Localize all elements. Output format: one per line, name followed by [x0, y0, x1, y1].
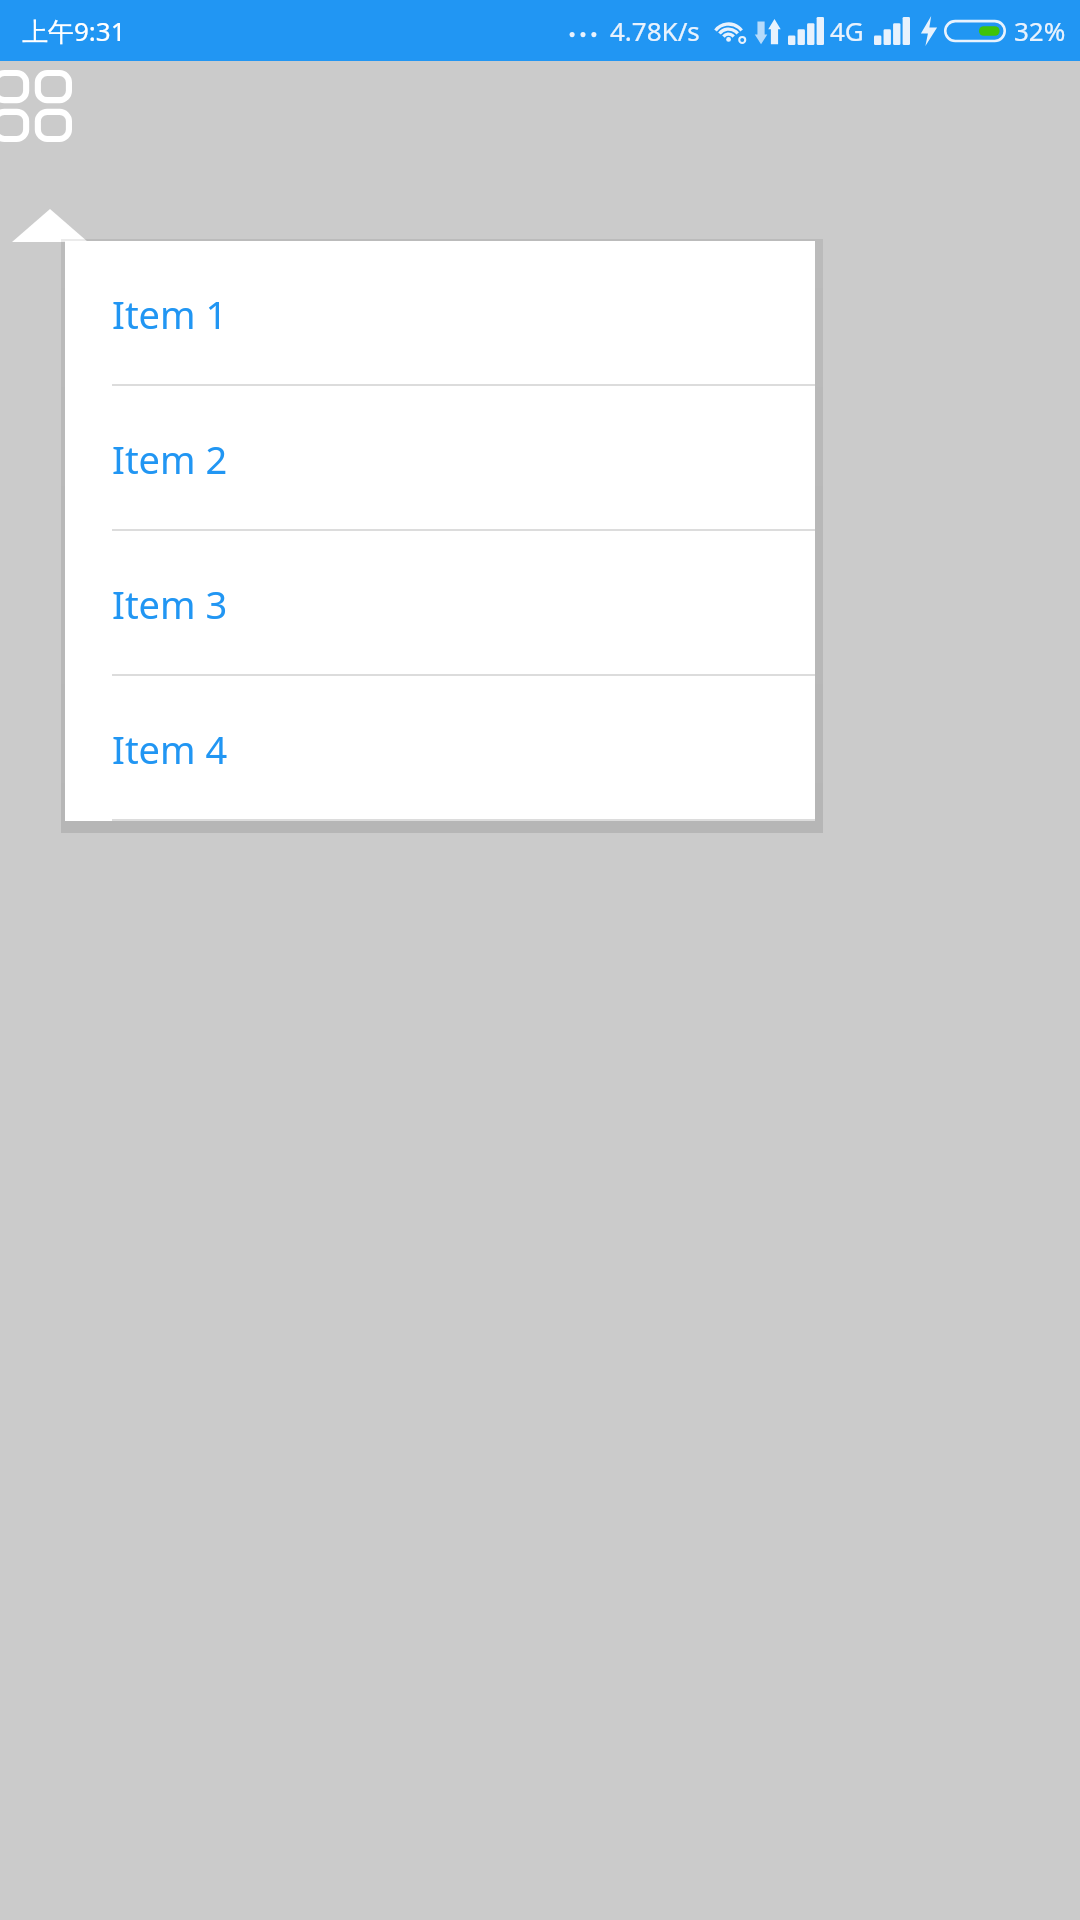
staticText: Item 1	[112, 288, 228, 340]
button[interactable]: Item 4	[65, 676, 815, 821]
staticText: 4G	[830, 13, 864, 48]
staticText: Item 2	[112, 433, 228, 485]
button[interactable]: Item 1	[65, 241, 815, 386]
button[interactable]: Apps	[0, 70, 72, 142]
staticText: 上午9:31	[22, 13, 126, 49]
staticText: Item 4	[112, 723, 228, 775]
button[interactable]: Item 2	[65, 386, 815, 531]
staticText: Item 3	[112, 578, 228, 630]
staticText: 4.78K/s	[610, 13, 700, 48]
button[interactable]: Item 3	[65, 531, 815, 676]
staticText: 32%	[1014, 13, 1066, 48]
